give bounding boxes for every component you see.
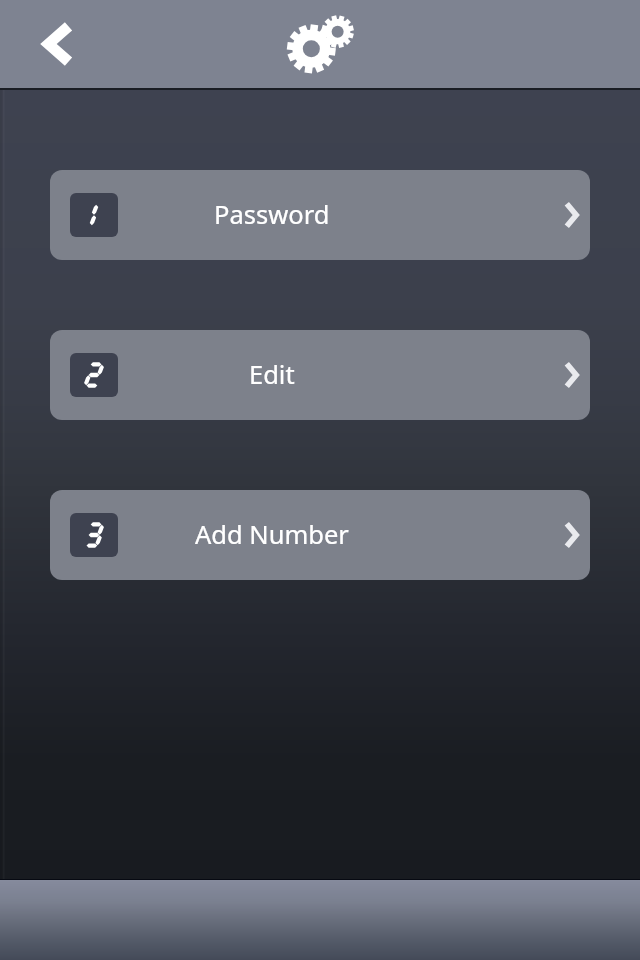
staticText: Edit [249,357,295,392]
staticText: Add Number [195,517,349,552]
button[interactable]: Back [33,14,81,74]
button[interactable]: Add Number [50,490,590,580]
button[interactable]: Edit [50,330,590,420]
button[interactable]: Settings [282,6,358,82]
staticText: Password [214,197,330,232]
button[interactable]: Password [50,170,590,260]
